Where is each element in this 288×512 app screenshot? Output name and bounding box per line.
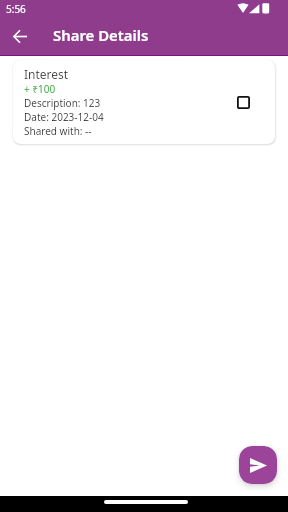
staticText: 5:56 xyxy=(6,2,26,16)
staticText: Shared with: -- xyxy=(24,124,92,138)
button[interactable]: Back xyxy=(6,22,34,50)
staticText: Share Details xyxy=(53,25,149,45)
button[interactable]: Select share xyxy=(232,91,254,113)
button[interactable]: Interest xyxy=(13,60,275,144)
staticText: + ₹100 xyxy=(24,82,56,96)
button[interactable]: Send xyxy=(239,446,277,484)
staticText: Interest xyxy=(24,66,69,82)
staticText: Date: 2023-12-04 xyxy=(24,110,104,124)
staticText: Description: 123 xyxy=(24,96,101,110)
